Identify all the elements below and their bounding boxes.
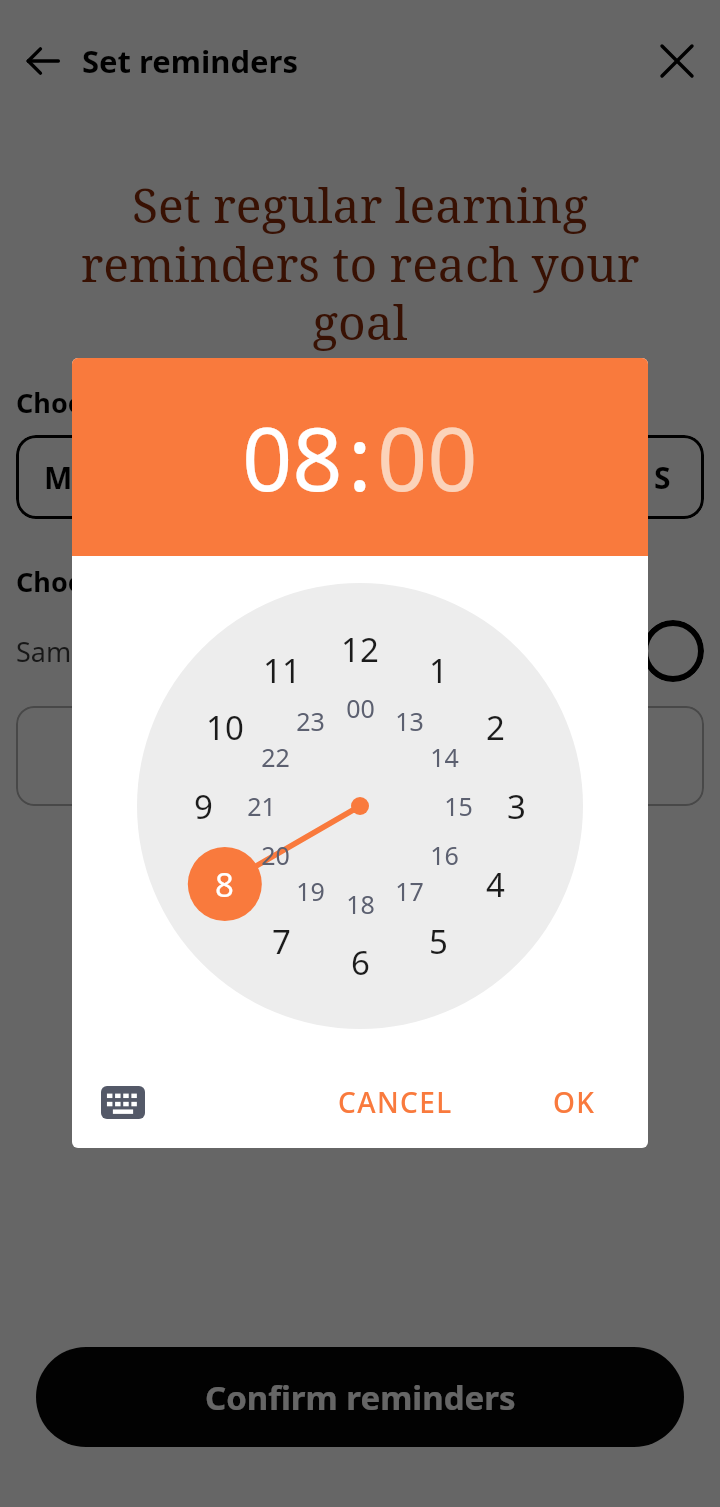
staticText: 10 <box>206 705 244 750</box>
button[interactable]: 18 <box>340 881 381 927</box>
staticText: Same time every day <box>16 633 279 670</box>
button[interactable]: 22 <box>255 734 296 780</box>
button[interactable]: 20 <box>255 832 296 878</box>
button[interactable]: 9 <box>188 778 219 835</box>
staticText: 6 <box>351 940 370 985</box>
button[interactable]: 1 <box>423 642 454 699</box>
staticText: 23 <box>296 704 325 738</box>
button[interactable]: 4 <box>480 856 511 913</box>
button[interactable]: 21 <box>241 783 282 829</box>
staticText: CANCEL <box>338 1083 453 1121</box>
button[interactable]: Toggle same time every day <box>642 620 704 682</box>
staticText: 3 <box>507 784 526 829</box>
button[interactable]: 23 <box>290 698 331 744</box>
staticText: 08 <box>242 397 343 517</box>
button[interactable]: F <box>419 435 503 519</box>
staticText: 11 <box>263 648 301 693</box>
staticText: 22 <box>261 740 290 774</box>
button[interactable]: 00 <box>340 685 381 731</box>
staticText: : <box>348 397 372 517</box>
button[interactable]: 10 <box>200 699 250 756</box>
button[interactable]: 2 <box>480 699 511 756</box>
staticText: 7 <box>272 919 291 964</box>
staticText: 19 <box>296 874 325 908</box>
staticText: Set reminders <box>82 40 299 82</box>
staticText: F <box>453 457 470 498</box>
staticText: 00 <box>346 691 375 725</box>
staticText: 5 <box>429 919 448 964</box>
button[interactable]: Back <box>14 32 72 90</box>
staticText: 8 <box>215 862 234 907</box>
staticText: 1 <box>429 648 448 693</box>
button[interactable]: 3 <box>501 778 532 835</box>
staticText: 13 <box>395 704 424 738</box>
button[interactable]: M <box>16 435 100 519</box>
staticText: OK <box>553 1083 596 1121</box>
button[interactable]: 00 <box>377 397 478 517</box>
staticText: M <box>44 457 73 498</box>
staticText: 21 <box>247 789 276 823</box>
button[interactable]: 7 <box>266 913 297 970</box>
button[interactable]: S <box>620 435 704 519</box>
button[interactable]: OK <box>539 1075 610 1129</box>
staticText: 12 <box>341 627 379 672</box>
staticText: Choose days <box>16 384 184 421</box>
button[interactable]: 19 <box>290 868 331 914</box>
staticText: Set regular learning reminders to reach … <box>42 172 678 354</box>
button[interactable]: 08 <box>242 397 343 517</box>
staticText: 2 <box>486 705 505 750</box>
button[interactable]: 15 <box>438 783 479 829</box>
button[interactable]: 16 <box>424 832 465 878</box>
staticText: 15 <box>444 789 473 823</box>
button[interactable]: 8 <box>209 856 240 913</box>
button[interactable]: 17 <box>389 868 430 914</box>
staticText: 00 <box>377 397 478 517</box>
staticText: W <box>244 457 274 498</box>
staticText: S <box>654 457 671 498</box>
button[interactable]: Confirm reminders <box>36 1347 684 1447</box>
staticText: Choose time <box>16 563 184 600</box>
staticText: T <box>351 457 369 498</box>
staticText: 9 <box>194 784 213 829</box>
button[interactable]: 14 <box>424 734 465 780</box>
staticText: Confirm reminders <box>205 1375 516 1420</box>
button[interactable]: CANCEL <box>324 1075 467 1129</box>
staticText: 4 <box>486 862 505 907</box>
staticText: 17 <box>395 874 424 908</box>
button[interactable] <box>16 706 704 806</box>
staticText: 20 <box>261 838 290 872</box>
button[interactable]: 11 <box>257 642 307 699</box>
button[interactable]: T <box>318 435 402 519</box>
button[interactable]: 6 <box>345 934 376 991</box>
staticText: 18 <box>346 887 375 921</box>
staticText: 14 <box>430 740 459 774</box>
button[interactable]: Close <box>648 32 706 90</box>
button[interactable]: W <box>217 435 301 519</box>
button[interactable]: 13 <box>389 698 430 744</box>
button[interactable]: Switch to text input <box>94 1073 152 1131</box>
button[interactable]: 12 <box>335 621 385 678</box>
button[interactable]: 5 <box>423 913 454 970</box>
staticText: 16 <box>430 838 459 872</box>
